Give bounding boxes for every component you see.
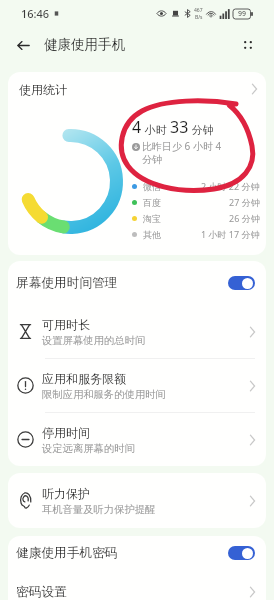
staticText: 密码设置 — [16, 584, 67, 600]
button[interactable]: 密码设置 — [8, 570, 266, 600]
staticText: 限制应用和服务的使用时间 — [42, 388, 166, 401]
staticText: 屏幕使用时间管理 — [16, 275, 118, 291]
staticText: 2 小时 22 分钟 — [201, 180, 260, 192]
staticText: 分钟 — [189, 122, 214, 137]
staticText: 99 — [238, 9, 247, 19]
staticText: 应用和服务限额 — [42, 371, 126, 386]
button[interactable]: Toggle — [228, 276, 255, 290]
staticText: 淘宝 — [143, 213, 161, 224]
button[interactable]: 停用时间 — [8, 413, 266, 466]
staticText: B/s — [195, 14, 203, 21]
button[interactable]: 可用时长 — [8, 305, 266, 358]
staticText: 设置屏幕使用的总时间 — [42, 334, 145, 347]
button[interactable]: Back — [11, 33, 35, 57]
staticText: 27 分钟 — [229, 196, 260, 208]
staticText: 16:46 — [21, 6, 50, 21]
button[interactable]: More options — [236, 33, 260, 57]
staticText: 使用统计 — [19, 82, 67, 97]
staticText: 健康使用手机密码 — [16, 545, 118, 561]
button[interactable]: 健康使用手机密码 — [8, 536, 266, 570]
button[interactable]: 使用统计 — [8, 72, 266, 106]
staticText: 耳机音量及听力保护提醒 — [42, 503, 156, 516]
staticText: 可用时长 — [42, 317, 90, 332]
staticText: 停用时间 — [42, 425, 90, 440]
button[interactable]: 应用和服务限额 — [8, 359, 266, 412]
button[interactable]: 屏幕使用时间管理 — [8, 261, 266, 305]
staticText: 设定远离屏幕的时间 — [42, 442, 135, 455]
staticText: 26 分钟 — [229, 212, 260, 224]
staticText: 百度 — [143, 197, 161, 208]
staticText: 467 — [194, 7, 203, 14]
staticText: 4 — [132, 116, 142, 138]
staticText: 33 — [170, 116, 189, 138]
button[interactable]: Toggle — [228, 546, 255, 560]
staticText: 1 小时 17 分钟 — [201, 228, 260, 240]
button[interactable]: 听力保护 — [8, 473, 266, 528]
staticText: 比昨日少 6 小时 4 分钟 — [142, 139, 223, 166]
staticText: 听力保护 — [42, 486, 90, 501]
staticText: 微信 — [143, 181, 161, 192]
staticText: 健康使用手机 — [44, 36, 125, 53]
staticText: 其他 — [143, 229, 161, 240]
staticText: 小时 — [142, 122, 170, 137]
